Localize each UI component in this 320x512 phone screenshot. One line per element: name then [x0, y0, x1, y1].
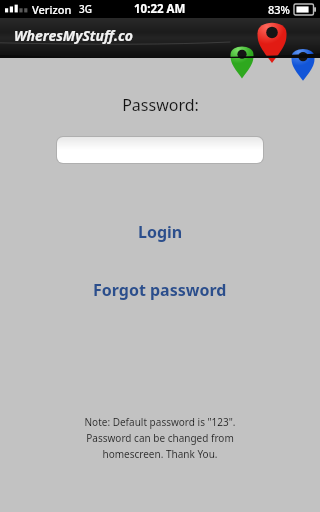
staticText: 83% [268, 2, 290, 17]
staticText: Login [138, 221, 183, 243]
button[interactable]: Login [128, 218, 193, 246]
staticText: 10:22 AM [134, 1, 186, 17]
staticText: Password can be changed from [86, 431, 234, 445]
staticText: Password: [122, 94, 199, 116]
staticText: Forgot password [93, 279, 227, 301]
staticText: Note: Default password is "123". [84, 415, 236, 429]
staticText: Verizon [32, 2, 72, 17]
staticText: 3G [79, 2, 92, 16]
staticText: WheresMyStuff.co [14, 26, 134, 45]
button[interactable]: Forgot password [83, 276, 237, 304]
staticText: homescreen. Thank You. [102, 447, 218, 461]
button[interactable] [57, 137, 263, 163]
